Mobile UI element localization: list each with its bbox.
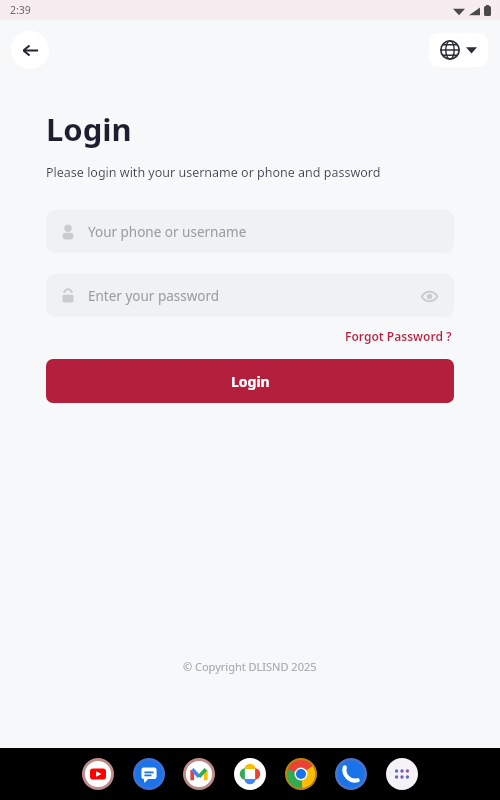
button[interactable]: Select language	[429, 33, 488, 67]
button[interactable]: Messages	[131, 756, 167, 792]
staticText: Login	[46, 108, 132, 150]
button[interactable]: Login	[46, 359, 454, 403]
staticText: Enter your password	[88, 287, 418, 305]
staticText: Login	[231, 372, 270, 391]
button[interactable]: Enter your password	[46, 274, 454, 317]
staticText: Please login with your username or phone…	[46, 164, 381, 181]
button[interactable]: Photos	[232, 756, 268, 792]
staticText: Your phone or username	[88, 223, 440, 241]
button[interactable]: Back	[11, 31, 49, 69]
button[interactable]: YouTube	[80, 756, 116, 792]
button[interactable]: Chrome	[283, 756, 319, 792]
button[interactable]: All apps	[384, 756, 420, 792]
staticText: 2:39	[10, 3, 31, 17]
button[interactable]: Gmail	[181, 756, 217, 792]
staticText: Forgot Password ?	[345, 328, 452, 344]
button[interactable]: Your phone or username	[46, 210, 454, 253]
button[interactable]: Forgot Password ?	[343, 326, 454, 346]
button[interactable]: Phone	[333, 756, 369, 792]
button[interactable]: Show password	[418, 285, 440, 307]
staticText: © Copyright DLISND 2025	[183, 659, 317, 674]
